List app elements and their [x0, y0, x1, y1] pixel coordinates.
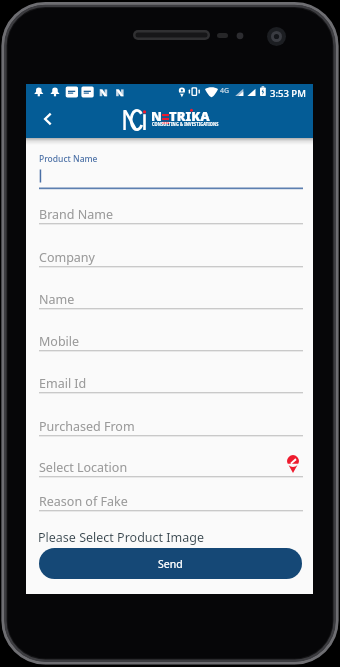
button[interactable]: Product Name [39, 153, 303, 191]
staticText: 3:53 PM [270, 87, 306, 100]
button[interactable]: Brand Name [39, 206, 303, 224]
button[interactable]: Pick location [287, 455, 299, 473]
staticText: Please Select Product Image [38, 529, 204, 546]
button[interactable]: Mobile [39, 333, 303, 351]
staticText: Email Id [39, 375, 87, 392]
staticText: TRIKA [169, 107, 210, 125]
staticText: Reason of Fake [39, 493, 128, 510]
button[interactable]: Send [39, 548, 302, 579]
button[interactable]: Company [39, 249, 303, 267]
staticText: Name [39, 291, 75, 308]
button[interactable]: Email Id [39, 375, 303, 393]
button[interactable]: Name [39, 291, 303, 309]
button[interactable]: Back [32, 105, 60, 133]
staticText: Send [158, 557, 183, 571]
button[interactable]: Reason of Fake [39, 493, 303, 511]
button[interactable]: Select Location [39, 459, 303, 477]
button[interactable]: Purchased From [39, 418, 303, 436]
staticText: N [151, 107, 162, 125]
staticText: Brand Name [39, 206, 113, 223]
staticText: Mobile [39, 333, 80, 350]
staticText: Select Location [39, 459, 128, 476]
staticText: CONSULTING & INVESTIGATIONS [152, 120, 219, 128]
staticText: Product Name [39, 153, 98, 165]
staticText: Purchased From [39, 418, 135, 435]
staticText: Company [39, 249, 95, 266]
staticText: 4G [220, 86, 230, 96]
